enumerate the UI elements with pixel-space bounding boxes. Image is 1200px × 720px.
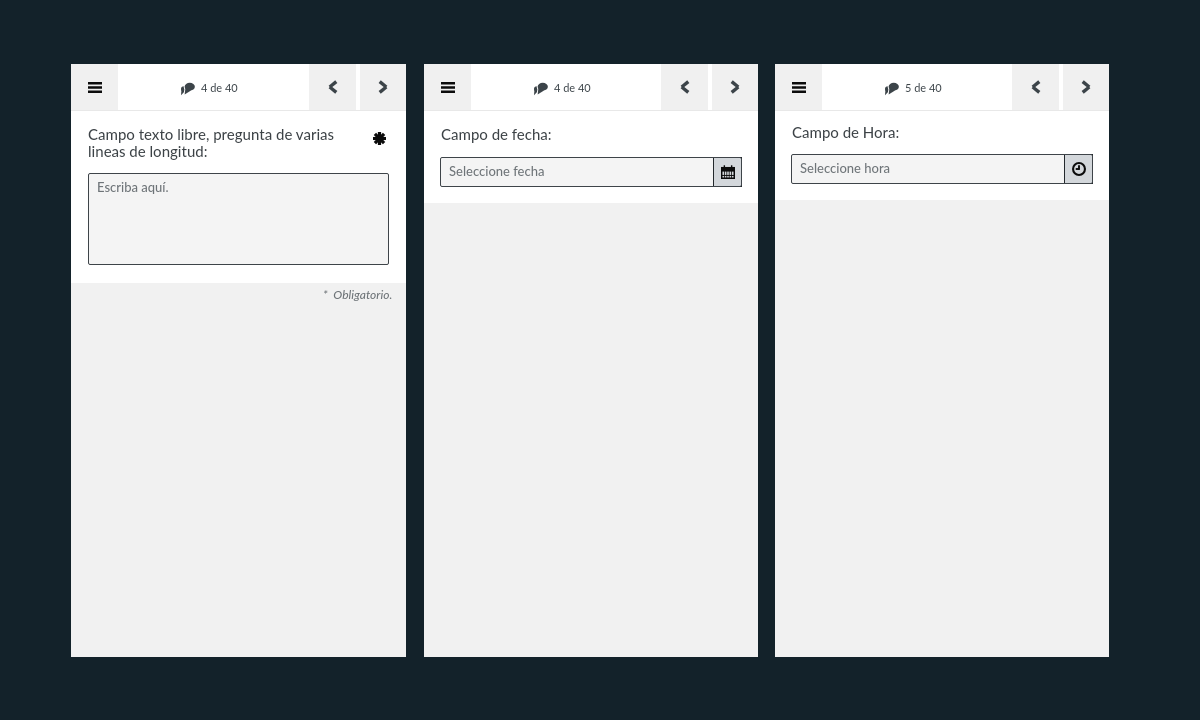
staticText: Seleccione hora — [800, 160, 891, 176]
other: Pick date — [713, 157, 742, 187]
button[interactable]: Open menu — [424, 64, 471, 110]
button[interactable]: Next question — [360, 64, 406, 110]
button[interactable]: Seleccione fecha — [440, 157, 742, 187]
button[interactable]: Previous question — [309, 64, 356, 110]
staticText: Escriba aquí. — [97, 179, 169, 195]
staticText: Campo texto libre, pregunta de varias li… — [88, 125, 374, 160]
button[interactable]: Previous question — [1012, 64, 1059, 110]
button[interactable]: Next question — [1063, 64, 1109, 110]
button[interactable]: Next question — [712, 64, 758, 110]
staticText: 4 de 40 — [554, 81, 591, 94]
other: Pick time — [1064, 154, 1093, 184]
button[interactable]: Previous question — [661, 64, 708, 110]
button[interactable]: Open menu — [71, 64, 118, 110]
staticText: 5 de 40 — [905, 81, 942, 94]
staticText: * Obligatorio. — [323, 287, 393, 301]
staticText: Campo de fecha: — [441, 125, 552, 143]
button[interactable]: Open menu — [775, 64, 822, 110]
staticText: Seleccione fecha — [449, 163, 545, 179]
staticText: 4 de 40 — [201, 81, 238, 94]
staticText: Campo de Hora: — [792, 123, 900, 141]
button[interactable]: Seleccione hora — [791, 154, 1093, 184]
button[interactable]: Escriba aquí. — [88, 173, 389, 265]
